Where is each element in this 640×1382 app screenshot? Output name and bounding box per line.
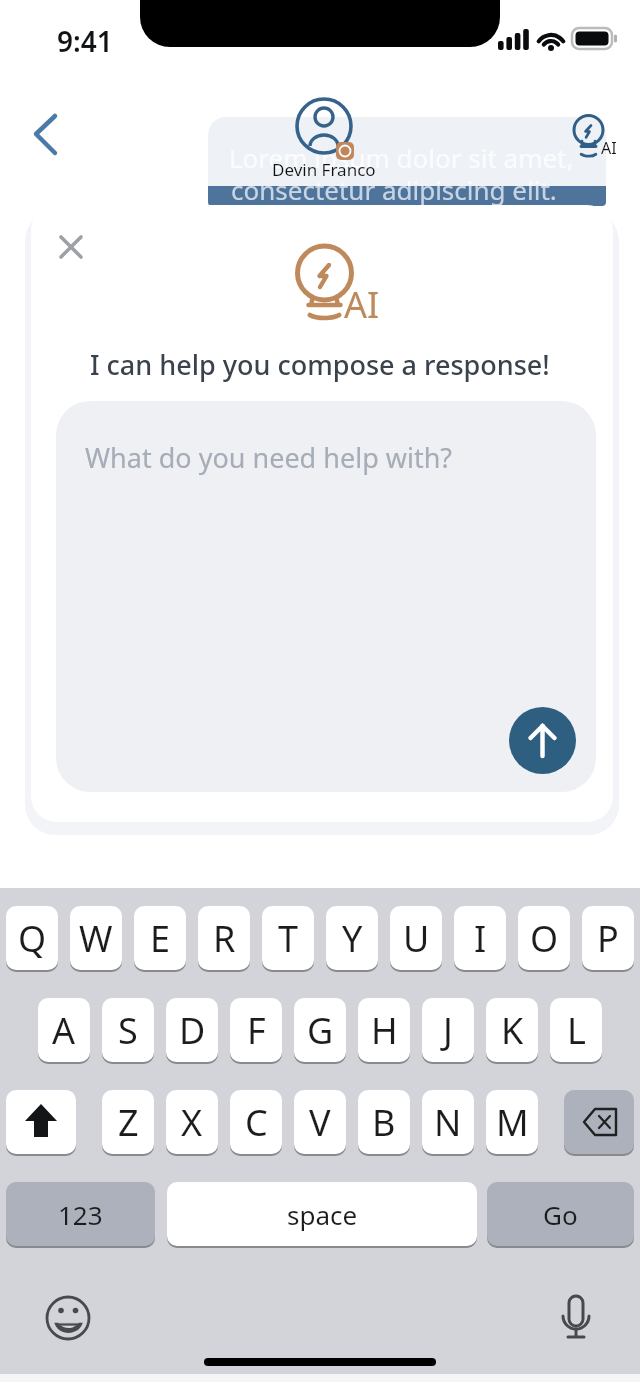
button[interactable]: D — [166, 998, 218, 1062]
button[interactable] — [44, 1294, 92, 1342]
button[interactable]: 123 — [6, 1182, 155, 1246]
staticText: space — [287, 1197, 358, 1232]
button[interactable]: F — [230, 998, 282, 1062]
button[interactable]: T — [262, 906, 314, 970]
button[interactable]: O — [518, 906, 570, 970]
button[interactable]: M — [486, 1090, 538, 1154]
button[interactable]: L — [550, 998, 602, 1062]
staticText: K — [501, 1006, 524, 1055]
staticText: Z — [118, 1098, 139, 1147]
button[interactable]: E — [134, 906, 186, 970]
button[interactable] — [564, 1090, 634, 1154]
staticText: AI — [601, 137, 617, 159]
staticText: W — [79, 914, 113, 963]
button[interactable] — [290, 92, 358, 176]
staticText: I can help you compose a response! — [90, 346, 550, 383]
button[interactable]: C — [230, 1090, 282, 1154]
button[interactable]: AI — [564, 104, 628, 164]
button[interactable]: P — [582, 906, 634, 970]
button[interactable]: A — [38, 998, 90, 1062]
button[interactable]: R — [198, 906, 250, 970]
button[interactable]: W — [70, 906, 122, 970]
button[interactable] — [49, 225, 93, 269]
staticText: X — [181, 1098, 203, 1147]
staticText: S — [118, 1006, 138, 1055]
button[interactable]: Go — [487, 1182, 634, 1246]
button[interactable]: What do you need help with? — [56, 401, 596, 792]
button[interactable]: U — [390, 906, 442, 970]
button[interactable]: X — [166, 1090, 218, 1154]
staticText: Q — [18, 914, 47, 963]
staticText: 123 — [58, 1197, 103, 1232]
staticText: N — [434, 1098, 462, 1147]
staticText: Go — [543, 1197, 578, 1232]
staticText: M — [496, 1098, 529, 1147]
staticText: AI — [344, 280, 380, 329]
staticText: B — [372, 1098, 396, 1147]
staticText: F — [247, 1006, 266, 1055]
staticText: Lorem ipsum dolor sit amet, — [229, 140, 574, 175]
staticText: O — [530, 914, 559, 963]
staticText: Devin Franco — [272, 158, 376, 181]
button[interactable]: Y — [326, 906, 378, 970]
staticText: P — [597, 914, 619, 963]
button[interactable]: B — [358, 1090, 410, 1154]
button[interactable]: S — [102, 998, 154, 1062]
staticText: Y — [342, 914, 363, 963]
staticText: A — [52, 1006, 76, 1055]
staticText: consectetur adipiscing elit. — [231, 172, 557, 207]
button[interactable] — [20, 102, 68, 166]
button[interactable] — [6, 1090, 76, 1154]
button[interactable]: Q — [6, 906, 58, 970]
staticText: E — [150, 914, 171, 963]
button[interactable]: Z — [102, 1090, 154, 1154]
staticText: C — [245, 1098, 268, 1147]
button[interactable]: V — [294, 1090, 346, 1154]
staticText: H — [371, 1006, 398, 1055]
staticText: I — [474, 914, 487, 963]
button[interactable] — [509, 707, 576, 774]
button[interactable]: I — [454, 906, 506, 970]
staticText: 9:41 — [57, 22, 113, 60]
button[interactable] — [552, 1292, 600, 1344]
staticText: G — [307, 1006, 334, 1055]
button[interactable]: J — [422, 998, 474, 1062]
button[interactable]: N — [422, 1090, 474, 1154]
staticText: J — [443, 1006, 453, 1055]
button[interactable]: H — [358, 998, 410, 1062]
staticText: R — [213, 914, 236, 963]
button[interactable]: K — [486, 998, 538, 1062]
button[interactable]: G — [294, 998, 346, 1062]
staticText: What do you need help with? — [85, 439, 453, 476]
staticText: V — [309, 1098, 331, 1147]
staticText: U — [403, 914, 430, 963]
staticText: L — [567, 1006, 586, 1055]
staticText: T — [278, 914, 299, 963]
staticText: D — [179, 1006, 206, 1055]
button[interactable]: space — [167, 1182, 477, 1246]
